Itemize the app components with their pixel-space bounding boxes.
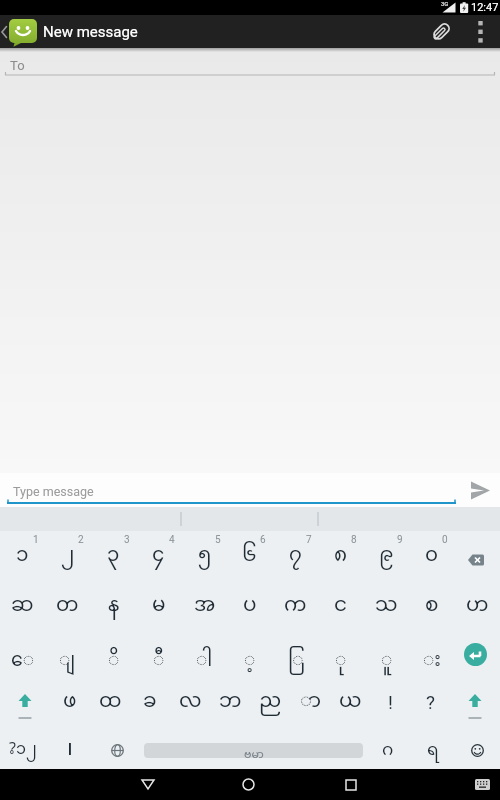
button[interactable]: င [318, 579, 363, 627]
button[interactable] [455, 531, 500, 579]
staticText: ၉ [379, 535, 394, 579]
staticText: ြ [288, 641, 304, 682]
button[interactable] [331, 769, 371, 800]
staticText: ၃ [107, 535, 120, 579]
button[interactable]: အ [182, 579, 227, 627]
button[interactable] [8, 16, 42, 47]
button[interactable]: ရ [410, 721, 455, 769]
staticText: ထ [99, 681, 122, 725]
button[interactable]: ၆ [227, 531, 272, 579]
staticText: ာ [300, 681, 321, 725]
staticText: ၊ [67, 726, 73, 774]
staticText: 12:47 [471, 1, 499, 14]
staticText: ခ [143, 681, 157, 725]
button[interactable]: ၃ [91, 531, 136, 579]
button[interactable] [7, 473, 456, 507]
staticText: စ [425, 585, 439, 629]
button[interactable]: ယ [330, 674, 370, 722]
staticText: ီ [153, 641, 165, 682]
button[interactable]: ၄ [136, 531, 181, 579]
staticText: ? [426, 691, 435, 713]
button[interactable] [462, 15, 500, 48]
button[interactable]: ီ [136, 626, 181, 674]
button[interactable]: ဆ [0, 579, 45, 627]
button[interactable]: ?၁၂ [0, 721, 45, 769]
button[interactable]: ဖ [50, 674, 90, 722]
button[interactable]: ့ [227, 626, 272, 674]
staticText: ူ [381, 641, 393, 682]
button[interactable]: ၇ [273, 531, 318, 579]
staticText: 5 [215, 534, 221, 546]
button[interactable]: ပ [227, 579, 272, 627]
button[interactable]: To [0, 48, 500, 78]
button[interactable]: တ [45, 579, 90, 627]
button[interactable]: ြ [273, 626, 318, 674]
staticText: ု [335, 641, 347, 682]
staticText: ! [388, 691, 393, 713]
staticText: ဂ [382, 732, 394, 769]
button[interactable]: သ [364, 579, 409, 627]
staticText: ဘ [219, 681, 242, 725]
staticText: ၆ [242, 535, 257, 579]
staticText: 2 [78, 534, 84, 546]
button[interactable]: ါ [182, 626, 227, 674]
staticText: 4 [169, 534, 175, 546]
button[interactable]: ဘ [210, 674, 250, 722]
button[interactable] [95, 721, 140, 769]
button[interactable] [128, 769, 168, 800]
button[interactable]: ၉ [364, 531, 409, 579]
button[interactable]: က [273, 579, 318, 627]
button[interactable]: ၅ [182, 531, 227, 579]
button[interactable]: ၈ [318, 531, 363, 579]
button[interactable]: ထ [90, 674, 130, 722]
staticText: 1 [33, 534, 39, 546]
button[interactable]: ၂ [45, 531, 90, 579]
button[interactable]: ူ [364, 626, 409, 674]
button[interactable]: ၊ [45, 721, 95, 769]
staticText: တ [56, 585, 79, 629]
button[interactable]: ၀ [409, 531, 454, 579]
staticText: လ [179, 681, 202, 725]
staticText: က [284, 585, 307, 629]
staticText: ါ [196, 641, 213, 682]
button[interactable]: ေ [0, 626, 45, 674]
staticText: ၄ [152, 535, 165, 579]
button[interactable]: ? [410, 674, 450, 722]
button[interactable]: ည [250, 674, 290, 722]
staticText: ိ [108, 641, 120, 682]
button[interactable] [228, 769, 268, 800]
staticText: ဆ [11, 585, 34, 629]
staticText: အ [194, 585, 216, 629]
button[interactable]: မ [136, 579, 181, 627]
staticText: ပ [243, 585, 257, 629]
button[interactable]: ျ [45, 626, 90, 674]
button[interactable] [422, 15, 459, 48]
button[interactable] [0, 674, 50, 722]
button[interactable]: ဟ [455, 579, 500, 627]
button[interactable]: ဂ [365, 721, 410, 769]
staticText: ဖ [63, 681, 77, 725]
button[interactable]: ဗမာ [144, 743, 363, 758]
button[interactable]: ု [318, 626, 363, 674]
button[interactable]: ာ [290, 674, 330, 722]
button[interactable] [455, 721, 500, 769]
button[interactable]: ခ [130, 674, 170, 722]
button[interactable]: း [409, 626, 454, 674]
button[interactable] [455, 626, 500, 674]
button[interactable]: ၁ [0, 531, 45, 579]
button[interactable]: စ [409, 579, 454, 627]
staticText: ၈ [334, 535, 348, 579]
button[interactable]: ! [370, 674, 410, 722]
button[interactable]: န [91, 579, 136, 627]
staticText: ၀ [425, 535, 439, 579]
staticText: 0 [442, 534, 448, 546]
button[interactable] [468, 769, 496, 800]
button[interactable]: ိ [91, 626, 136, 674]
button[interactable] [460, 473, 500, 507]
staticText: း [423, 641, 441, 682]
staticText: New message [43, 23, 138, 41]
staticText: င [334, 585, 347, 629]
staticText: ့ [244, 641, 256, 682]
button[interactable] [450, 674, 500, 722]
button[interactable]: လ [170, 674, 210, 722]
